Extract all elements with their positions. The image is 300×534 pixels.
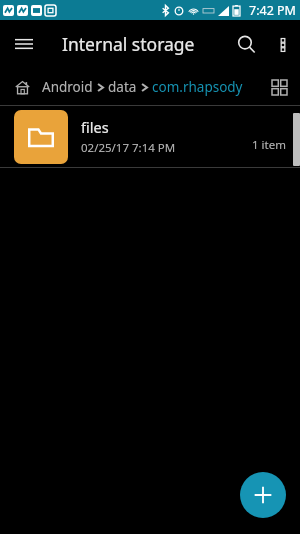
staticText: 1 item	[252, 137, 286, 153]
button[interactable]: More options	[266, 27, 300, 61]
button[interactable]: com.rhapsody	[152, 78, 243, 96]
button[interactable]: Home	[10, 75, 34, 99]
button[interactable]: Add	[240, 472, 286, 518]
button[interactable]: data	[108, 78, 137, 96]
staticText: 7:42 PM	[249, 2, 296, 19]
button[interactable]: files	[0, 106, 300, 167]
staticText: data	[108, 78, 137, 96]
staticText: Internal storage	[62, 32, 195, 56]
staticText: 02/25/17 7:14 PM	[81, 140, 176, 156]
staticText: Android	[42, 78, 93, 96]
button[interactable]: Switch to grid view	[264, 72, 294, 102]
button[interactable]: Android	[42, 78, 93, 96]
staticText: com.rhapsody	[152, 78, 243, 96]
button[interactable]: Open navigation drawer	[6, 26, 42, 62]
button[interactable]: Search	[226, 24, 266, 64]
staticText: files	[81, 117, 109, 137]
